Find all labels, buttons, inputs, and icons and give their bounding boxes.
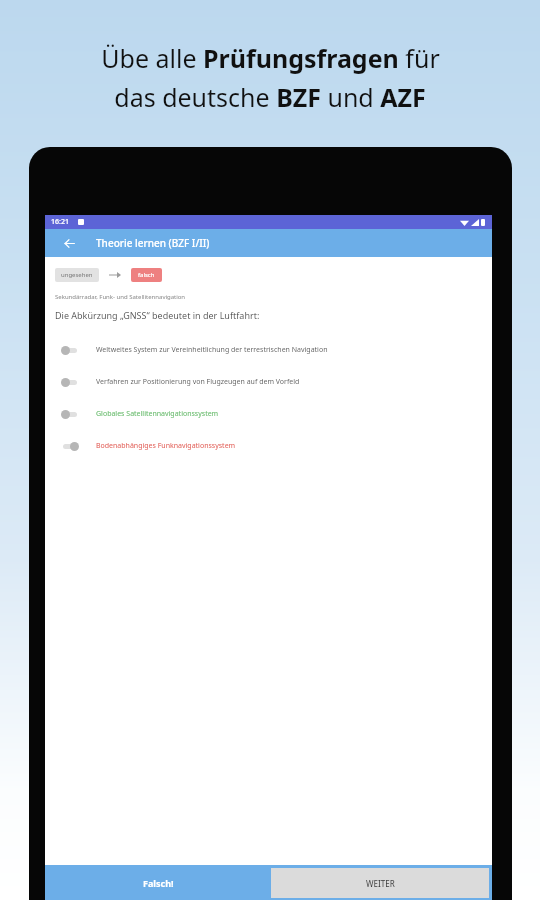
button[interactable]: Back (60, 234, 79, 253)
staticText: Globales Satellitennavigationssystem (96, 409, 219, 419)
button[interactable]: falsch (131, 268, 162, 282)
staticText: 16:21 (51, 217, 69, 227)
staticText: ungesehen (61, 271, 93, 279)
staticText: Bodenabhängiges Funknavigationssystem (96, 441, 236, 451)
staticText: das deutsche BZF und AZF (114, 80, 426, 114)
staticText: Sekundärradar, Funk- und Satellitennavig… (55, 293, 186, 301)
staticText: WEITER (366, 878, 395, 889)
button[interactable]: Globales Satellitennavigationssystem (45, 406, 492, 422)
staticText: Weltweites System zur Vereinheitlichung … (96, 345, 328, 355)
button[interactable]: ungesehen (55, 268, 99, 282)
staticText: falsch (138, 271, 155, 279)
button[interactable]: Falsch! (45, 865, 272, 900)
staticText: Die Abkürzung „GNSS“ bedeutet in der Luf… (55, 309, 260, 321)
staticText: Theorie lernen (BZF I/II) (96, 236, 210, 250)
button[interactable]: Verfahren zur Positionierung von Flugzeu… (45, 374, 492, 390)
button[interactable]: Bodenabhängiges Funknavigationssystem (45, 438, 492, 454)
staticText: Verfahren zur Positionierung von Flugzeu… (96, 377, 300, 387)
staticText: Übe alle Prüfungsfragen für (101, 41, 440, 75)
staticText: Falsch! (143, 877, 174, 889)
button[interactable]: WEITER (271, 868, 489, 898)
button[interactable]: Weltweites System zur Vereinheitlichung … (45, 342, 492, 358)
